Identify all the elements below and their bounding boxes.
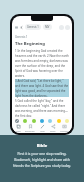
button[interactable]: More options [65,25,70,30]
button[interactable]: Highlight colour [40,119,44,123]
staticText: First it is your one stop reading. Bookm… [9,151,75,168]
staticText: Genesis 1 [27,25,39,29]
staticText: Bookmark [25,130,35,133]
staticText: 3 And God said, "Let there be light," an… [15,79,69,97]
staticText: 1 In the beginning God created the heave… [15,49,69,77]
staticText: Copy [16,130,21,133]
button[interactable]: Highlight colour [32,119,36,123]
button[interactable]: Copy [15,124,22,133]
staticText: Share [50,130,56,133]
button[interactable]: Note [39,124,46,133]
button[interactable]: Back [19,25,24,30]
button[interactable]: Highlight colour [48,119,52,123]
staticText: The Beginning [15,41,45,47]
staticText: Transfer [60,130,68,133]
button[interactable]: Genesis 1 [25,24,41,30]
button[interactable]: Highlight colour [57,119,61,123]
button[interactable]: Menu [14,25,19,30]
staticText: Bible [9,143,75,149]
staticText: NIV [45,25,50,29]
staticText: Genesis 1 [15,35,28,39]
button[interactable]: Share [49,124,57,133]
button[interactable]: NIV [43,24,52,30]
button[interactable]: Search [59,25,64,30]
button[interactable]: No highlight [15,119,19,123]
button[interactable]: Highlight colour [23,119,27,123]
button[interactable]: Highlight colour [65,119,69,123]
button[interactable]: Bookmark [24,124,36,133]
staticText: 5 God called the light "day," and the da… [15,99,69,117]
staticText: Note [40,130,45,133]
button[interactable]: Transfer [59,124,69,133]
